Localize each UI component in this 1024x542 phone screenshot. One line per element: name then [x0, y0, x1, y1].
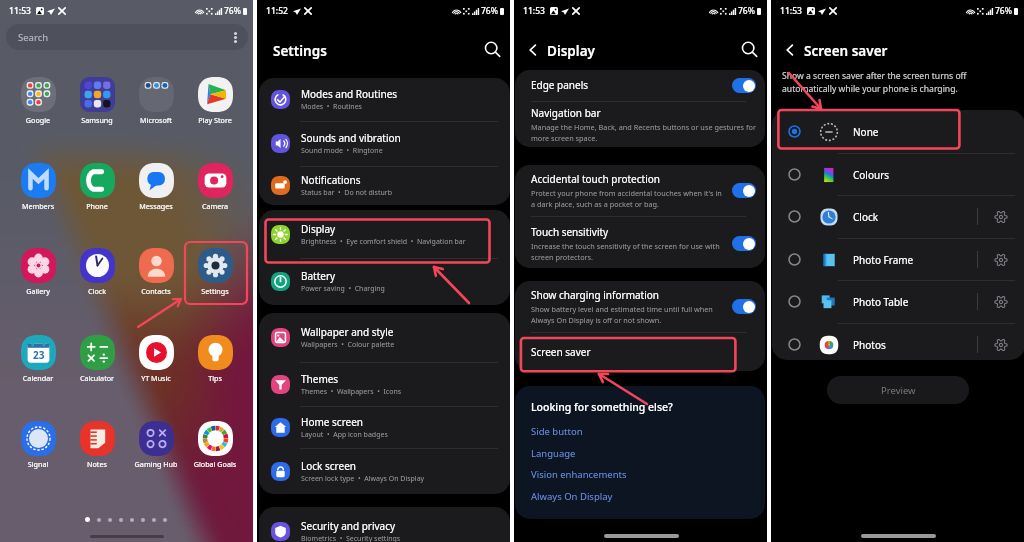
staticText: Manage the Home, Back, and Recents butto… [531, 122, 756, 143]
button[interactable]: Display [259, 210, 510, 258]
button[interactable]: Messages [127, 163, 185, 211]
button[interactable]: Photo Table [772, 280, 1024, 323]
staticText: 76% [738, 5, 755, 17]
button[interactable]: Google [9, 77, 67, 125]
button[interactable]: Toggle [732, 236, 756, 251]
button[interactable]: Settings [993, 209, 1009, 225]
button[interactable]: Colours [772, 153, 1024, 196]
button[interactable]: Home screen [259, 406, 510, 449]
staticText: Looking for something else? [531, 400, 673, 414]
button[interactable]: Settings [993, 294, 1009, 310]
staticText: Calendar [9, 373, 67, 383]
button[interactable]: Gallery [9, 248, 67, 296]
staticText: Wallpaper and style [301, 325, 394, 339]
button[interactable]: Accidental touch protection [515, 165, 765, 216]
button[interactable]: Microsoft [127, 77, 185, 125]
button[interactable]: Signal [9, 421, 67, 469]
button[interactable]: Toggle [732, 299, 756, 314]
button[interactable]: Phone [68, 163, 126, 211]
button[interactable]: Vision enhancements [531, 466, 627, 483]
staticText: Clock [853, 210, 879, 224]
staticText: Phone [68, 201, 126, 211]
button[interactable]: Contacts [127, 248, 185, 296]
staticText: Accidental touch protection [531, 172, 660, 186]
button[interactable]: Search [740, 40, 759, 59]
button[interactable]: 23 [9, 335, 67, 383]
button[interactable]: Notifications [259, 166, 510, 205]
staticText: Screen saver [804, 42, 888, 60]
button[interactable]: Battery [259, 258, 510, 305]
staticText: None [853, 125, 879, 139]
other: More options [234, 32, 237, 43]
button[interactable]: Touch sensitivity [515, 218, 765, 268]
staticText: 23 [33, 348, 45, 362]
staticText: Show charging information [531, 288, 660, 302]
button[interactable]: Themes [259, 362, 510, 406]
staticText: Messages [127, 201, 185, 211]
button[interactable]: Clock [772, 195, 1024, 238]
button[interactable]: Samsung [68, 77, 126, 125]
button[interactable]: Back [525, 42, 541, 58]
button[interactable]: Lock screen [259, 448, 510, 494]
button[interactable]: Notes [68, 421, 126, 469]
button[interactable]: Always On Display [531, 488, 613, 505]
button[interactable]: Tips [186, 335, 244, 383]
staticText: Preview [881, 384, 916, 397]
button[interactable]: Edge panels [515, 70, 765, 100]
button[interactable]: Toggle [732, 78, 756, 93]
staticText: Modes • Routines [301, 102, 362, 112]
button[interactable]: Search [483, 40, 502, 59]
staticText: Camera [186, 201, 244, 211]
button[interactable]: Sounds and vibration [259, 121, 510, 165]
button[interactable]: Calculator [68, 335, 126, 383]
staticText: Notes [68, 459, 126, 469]
staticText: Search [18, 31, 49, 44]
button[interactable]: Settings [186, 248, 244, 296]
button[interactable]: Modes and Routines [259, 78, 510, 121]
button[interactable]: Wallpaper and style [259, 313, 510, 362]
button[interactable]: Camera [186, 163, 244, 211]
button[interactable]: Members [9, 163, 67, 211]
staticText: Protect your phone from accidental touch… [531, 188, 725, 209]
button[interactable]: Language [531, 445, 576, 462]
button[interactable]: Settings [993, 337, 1009, 353]
staticText: YT Music [127, 373, 185, 383]
button[interactable]: Show charging information [515, 281, 765, 332]
button[interactable]: Security and privacy [259, 507, 510, 542]
button[interactable]: Toggle [732, 183, 756, 198]
button[interactable]: Settings [993, 252, 1009, 268]
staticText: Contacts [127, 286, 185, 296]
staticText: 11:53 [523, 5, 546, 17]
staticText: 76% [224, 5, 241, 17]
button[interactable]: Play Store [186, 77, 244, 125]
button[interactable]: Screen saver [515, 334, 765, 370]
staticText: Language [531, 447, 576, 460]
staticText: 11:53 [9, 5, 32, 17]
staticText: Brightness • Eye comfort shield • Naviga… [301, 237, 466, 247]
button[interactable]: Photo Frame [772, 238, 1024, 281]
button[interactable]: YT Music [127, 335, 185, 383]
button[interactable]: Search [6, 24, 248, 50]
button[interactable]: Global Goals [186, 421, 244, 469]
staticText: Modes and Routines [301, 87, 398, 101]
staticText: Status bar • Do not disturb [301, 188, 392, 198]
button[interactable]: Preview [827, 376, 969, 404]
staticText: Photo Table [853, 295, 909, 309]
staticText: Themes • Wallpapers • Icons [301, 387, 402, 397]
staticText: Clock [68, 286, 126, 296]
staticText: Microsoft [127, 115, 185, 125]
staticText: Sound mode • Ringtone [301, 146, 383, 156]
staticText: Home screen [301, 415, 364, 429]
button[interactable]: Side button [531, 423, 583, 440]
button[interactable]: Gaming Hub [127, 421, 185, 469]
staticText: 11:52 [266, 5, 289, 17]
staticText: Settings [186, 286, 244, 296]
staticText: Signal [9, 459, 67, 469]
staticText: Always On Display [531, 490, 613, 503]
button[interactable]: Photos [772, 323, 1024, 360]
button[interactable]: Clock [68, 248, 126, 296]
staticText: 11:53 [780, 5, 803, 17]
button[interactable]: Back [782, 42, 798, 58]
staticText: Settings [273, 42, 327, 60]
button[interactable]: None [772, 110, 1024, 153]
